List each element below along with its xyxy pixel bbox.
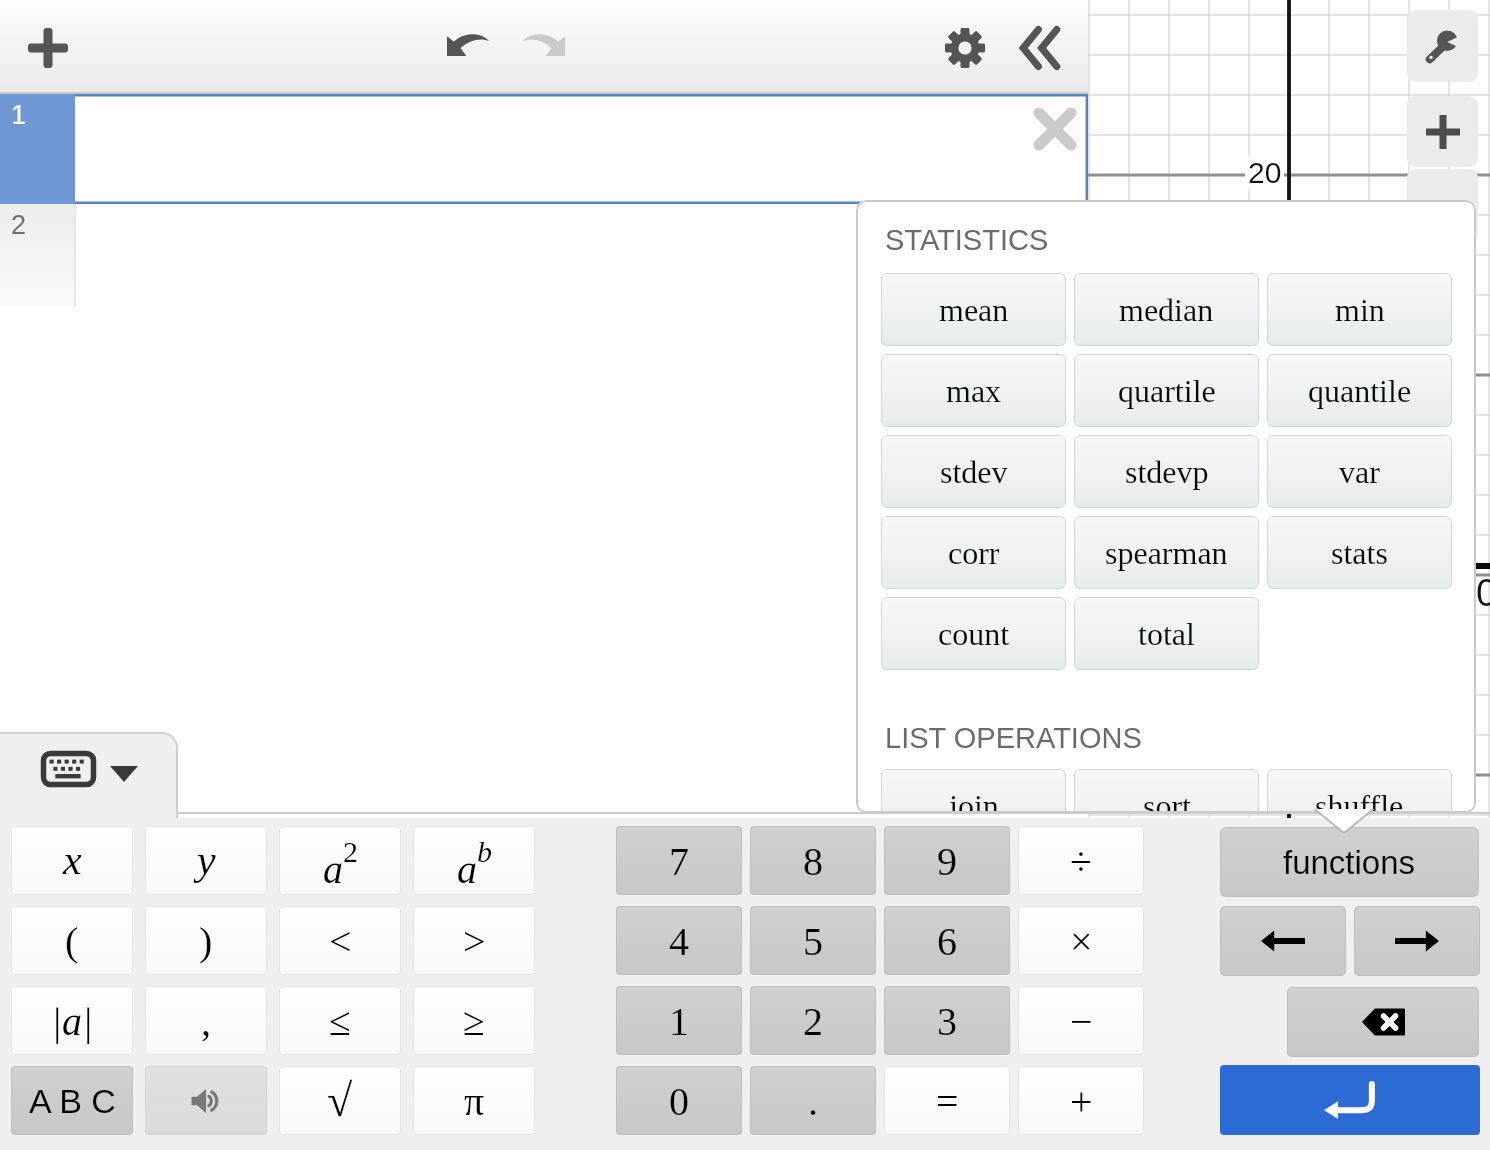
staticText: 1 (669, 999, 689, 1043)
button[interactable]: ÷ (1018, 826, 1144, 895)
button[interactable]: 4 (616, 906, 742, 975)
staticText: stdevp (1125, 454, 1209, 489)
button[interactable]: A B C (11, 1066, 133, 1135)
button[interactable]: 6 (884, 906, 1010, 975)
button[interactable]: Audio trace (145, 1066, 267, 1135)
staticText: ≥ (463, 999, 485, 1043)
staticText: 1 (11, 100, 27, 130)
button[interactable]: stdevp (1074, 435, 1259, 508)
button[interactable]: stats (1267, 516, 1452, 589)
button[interactable]: Move left (1220, 906, 1346, 976)
button[interactable]: quartile (1074, 354, 1259, 427)
button[interactable]: x (11, 826, 133, 895)
staticText: LIST OPERATIONS (885, 722, 1142, 754)
button[interactable]: Delete expression (1020, 94, 1090, 164)
staticText: min (1335, 292, 1385, 327)
button[interactable]: join (881, 769, 1066, 813)
button[interactable]: . (750, 1066, 876, 1135)
staticText: , (201, 999, 211, 1043)
button[interactable]: y (145, 826, 267, 895)
button[interactable]: corr (881, 516, 1066, 589)
button[interactable]: Undo (430, 8, 506, 84)
button[interactable]: + (1018, 1066, 1144, 1135)
button[interactable]: sort (1074, 769, 1259, 813)
staticText: + (1070, 1079, 1093, 1123)
staticText: a (457, 847, 477, 891)
button[interactable]: Enter (1220, 1065, 1480, 1135)
button[interactable]: spearman (1074, 516, 1259, 589)
button[interactable]: median (1074, 273, 1259, 346)
button[interactable]: 5 (750, 906, 876, 975)
button[interactable]: < (279, 906, 401, 975)
staticText: 20 (1248, 156, 1282, 189)
staticText: count (938, 616, 1010, 651)
staticText: 6 (937, 919, 957, 963)
staticText: b (477, 835, 492, 868)
button[interactable]: Backspace (1287, 987, 1479, 1057)
button[interactable]: Move right (1354, 906, 1480, 976)
button[interactable]: 9 (884, 826, 1010, 895)
staticText: mean (939, 292, 1009, 327)
staticText: ÷ (1070, 839, 1092, 883)
staticText: var (1339, 454, 1380, 489)
staticText: ≤ (329, 999, 351, 1043)
staticText: shuffle (1315, 788, 1404, 813)
button[interactable]: a (413, 826, 535, 895)
staticText: median (1119, 292, 1214, 327)
staticText: stdev (940, 454, 1008, 489)
button[interactable]: functions (1220, 827, 1479, 897)
button[interactable]: × (1018, 906, 1144, 975)
button[interactable]: max (881, 354, 1066, 427)
button[interactable]: 7 (616, 826, 742, 895)
button[interactable]: 1 (616, 986, 742, 1055)
staticText: stats (1331, 535, 1388, 570)
button[interactable]: count (881, 597, 1066, 670)
button[interactable]: Settings (926, 10, 1002, 86)
button[interactable]: Redo (506, 8, 582, 84)
button[interactable]: 2 (750, 986, 876, 1055)
staticText: 4 (669, 919, 689, 963)
button[interactable]: , (145, 986, 267, 1055)
button[interactable]: > (413, 906, 535, 975)
button[interactable]: Add expression (10, 10, 85, 85)
staticText: total (1138, 616, 1195, 651)
button[interactable]: 8 (750, 826, 876, 895)
button[interactable]: shuffle (1267, 769, 1452, 813)
button[interactable]: − (1018, 986, 1144, 1055)
staticText: x (63, 837, 82, 884)
button[interactable]: Collapse panel (1002, 10, 1078, 86)
button[interactable]: stdev (881, 435, 1066, 508)
button[interactable]: Zoom in (1407, 96, 1478, 167)
button[interactable]: var (1267, 435, 1452, 508)
button[interactable]: ≥ (413, 986, 535, 1055)
staticText: functions (1283, 844, 1416, 881)
button[interactable]: Keyboard options (0, 732, 178, 820)
button[interactable]: ≤ (279, 986, 401, 1055)
button[interactable]: mean (881, 273, 1066, 346)
staticText: < (329, 919, 352, 963)
staticText: √ (327, 1075, 353, 1126)
staticText: 2 (11, 210, 27, 240)
button[interactable]: Zoom out (1407, 169, 1478, 241)
staticText: spearman (1105, 535, 1228, 570)
staticText: − (1070, 999, 1093, 1043)
button[interactable]: √ (279, 1066, 401, 1135)
button[interactable]: π (413, 1066, 535, 1135)
staticText: 8 (803, 839, 823, 883)
button[interactable]: = (884, 1066, 1010, 1135)
button[interactable]: ) (145, 906, 267, 975)
staticText: 7 (669, 839, 689, 883)
button[interactable]: min (1267, 273, 1452, 346)
button[interactable]: 0 (616, 1066, 742, 1135)
button[interactable]: Graph settings (1407, 10, 1478, 82)
staticText: > (463, 919, 486, 963)
button[interactable]: quantile (1267, 354, 1452, 427)
button[interactable]: a (279, 826, 401, 895)
button[interactable]: |a| (11, 986, 133, 1055)
staticText: STATISTICS (885, 224, 1049, 256)
staticText: |a| (51, 999, 93, 1043)
button[interactable]: total (1074, 597, 1259, 670)
staticText: max (946, 373, 1002, 408)
button[interactable]: 3 (884, 986, 1010, 1055)
button[interactable]: ( (11, 906, 133, 975)
